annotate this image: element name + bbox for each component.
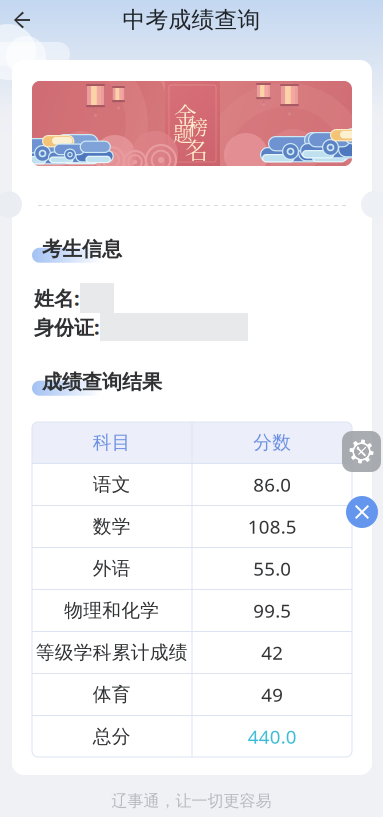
button[interactable]: Back [0,3,44,37]
staticText: 99.5 [253,598,291,623]
staticText: 总分 [93,725,131,748]
staticText: 49 [261,682,283,707]
staticText: 体育 [93,683,131,706]
staticText: 名 [185,133,208,166]
staticText: 科目 [93,431,131,454]
staticText: 物理和化学 [64,599,159,622]
staticText: 55.0 [253,556,291,581]
staticText: 42 [261,640,283,665]
staticText: 分数 [253,431,291,454]
staticText: 外语 [93,557,131,580]
staticText: 440.0 [248,724,297,749]
staticText: 辽事通，让一切更容易 [111,791,271,811]
staticText: 数学 [93,515,131,538]
staticText: 中考成绩查询 [122,6,260,34]
staticText: 榜 [188,112,208,141]
staticText: 金 [174,98,197,131]
staticText: 语文 [93,473,131,496]
staticText: 108.5 [248,514,297,539]
button[interactable]: Close [346,496,378,528]
staticText: 成绩查询结果 [42,370,162,394]
staticText: 姓名: [34,285,80,311]
staticText: 身份证: [34,314,100,340]
staticText: 86.0 [253,472,291,497]
button[interactable]: Developer tools [342,431,381,472]
staticText: 考生信息 [42,237,122,261]
staticText: 题 [173,119,193,148]
staticText: 等级学科累计成绩 [36,641,188,664]
